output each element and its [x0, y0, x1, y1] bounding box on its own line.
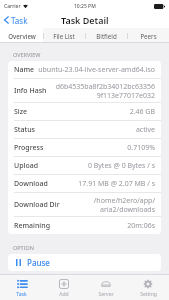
staticText: Task	[16, 291, 27, 298]
button[interactable]: Info Hash	[8, 79, 161, 102]
staticText: Upload	[14, 161, 39, 171]
button[interactable]: Remaining	[8, 217, 161, 234]
staticText: 17.91 MB @ 2.07 MB / s	[78, 179, 155, 189]
button[interactable]: Task	[0, 12, 35, 28]
other: Add task	[59, 279, 69, 289]
staticText: 0 Bytes @ 0 Bytes / s	[87, 161, 155, 171]
staticText: Carrier	[4, 3, 21, 10]
staticText: d6b4535ba8f2b34012bc63356 9f113e77017e03…	[55, 82, 155, 100]
button[interactable]: Size	[8, 103, 161, 120]
button[interactable]: Download Dir	[8, 193, 161, 216]
button[interactable]: Overview	[0, 28, 43, 43]
staticText: Size	[14, 107, 28, 117]
staticText: 20m:06s	[127, 221, 155, 231]
staticText: Add	[59, 291, 69, 298]
button[interactable]: Server	[85, 275, 127, 300]
staticText: /home/h2ero/app/ aria2/downloads	[93, 196, 155, 214]
staticText: ubuntu-23.04-live-server-amd64.iso	[38, 65, 155, 75]
staticText: Peers	[140, 32, 157, 40]
button[interactable]: Peers	[127, 28, 169, 43]
button[interactable]: Status	[8, 121, 161, 138]
staticText: Overview	[8, 32, 36, 40]
staticText: Download	[14, 179, 48, 189]
button[interactable]: Settings	[127, 275, 169, 300]
button[interactable]: File List	[43, 28, 85, 43]
button[interactable]: Pause	[8, 254, 161, 271]
staticText: Task	[11, 15, 28, 25]
staticText: OPTION	[13, 244, 35, 251]
staticText: Server	[98, 291, 114, 298]
staticText: 10:25 PM	[74, 3, 96, 10]
button[interactable]: Add task	[43, 275, 85, 300]
other: Settings	[143, 279, 153, 289]
staticText: Pause	[27, 257, 50, 268]
staticText: Download Dir	[14, 200, 60, 210]
staticText: Bitfield	[96, 32, 117, 40]
other: Task list	[17, 279, 27, 289]
staticText: active	[135, 125, 155, 135]
staticText: Status	[14, 125, 36, 135]
button[interactable]: Progress	[8, 139, 161, 156]
staticText: 2.46 GB	[129, 107, 155, 117]
button[interactable]: Download	[8, 175, 161, 192]
staticText: Progress	[14, 143, 44, 153]
other: Server	[101, 279, 111, 289]
staticText: File List	[53, 32, 75, 40]
staticText: Name	[14, 65, 35, 75]
button[interactable]: Name	[8, 61, 161, 78]
staticText: 0.7109%	[127, 143, 155, 153]
button[interactable]: Bitfield	[85, 28, 127, 43]
staticText: Info Hash	[14, 86, 47, 96]
button[interactable]: Task list	[0, 275, 43, 300]
button[interactable]: Upload	[8, 157, 161, 174]
staticText: OVERVIEW	[13, 51, 41, 58]
staticText: Setting	[140, 291, 157, 298]
staticText: Remaining	[14, 221, 50, 231]
staticText: Task Detail	[61, 14, 109, 26]
